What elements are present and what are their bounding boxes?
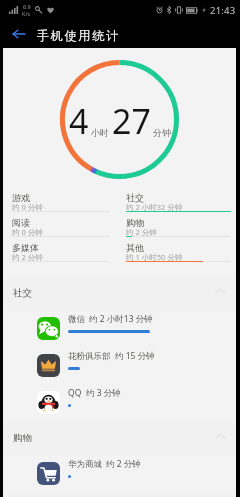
staticText: 其他 xyxy=(126,242,144,253)
staticText: 手机使用统计 xyxy=(37,28,120,43)
staticText: 约 2 分钟 xyxy=(106,458,141,470)
staticText: 社交 xyxy=(126,192,144,203)
staticText: 购物 xyxy=(13,432,32,444)
button[interactable]: 购物 xyxy=(126,212,231,237)
staticText: 约 3 分钟 xyxy=(86,387,121,399)
staticText: 游戏 xyxy=(12,192,30,203)
staticText: 6.9 xyxy=(23,3,31,10)
staticText: 约 2 分钟 xyxy=(12,252,43,262)
staticText: 华为商城 xyxy=(68,459,102,470)
button[interactable]: 游戏 xyxy=(12,187,109,212)
button[interactable]: 多媒体 xyxy=(12,237,109,262)
button[interactable]: 其他 xyxy=(126,237,231,262)
staticText: 小时 xyxy=(91,127,109,138)
staticText: 分钟 xyxy=(153,127,171,138)
staticText: 约 15 分钟 xyxy=(115,350,155,362)
staticText: 4 xyxy=(69,98,89,144)
staticText: 约 0 分钟 xyxy=(12,202,43,212)
button[interactable]: 阅读 xyxy=(12,212,109,237)
staticText: 多媒体 xyxy=(12,242,39,253)
staticText: K/s xyxy=(22,10,31,17)
staticText: 微信 xyxy=(68,314,85,325)
staticText: 21:43 xyxy=(210,4,236,17)
button[interactable]: QQ xyxy=(3,384,236,421)
button[interactable]: 花粉俱乐部 xyxy=(3,347,236,384)
staticText: 约 2 小时13 分钟 xyxy=(89,313,153,325)
button[interactable]: Back xyxy=(0,20,37,48)
staticText: 社交 xyxy=(13,287,32,299)
button[interactable]: 社交 xyxy=(126,187,231,212)
staticText: 约 2 分钟 xyxy=(126,227,157,237)
button[interactable]: 社交 xyxy=(3,276,236,310)
staticText: 约 0 分钟 xyxy=(12,227,43,237)
staticText: 购物 xyxy=(126,217,144,228)
staticText: 约 2 小时32 分钟 xyxy=(126,202,183,212)
staticText: 27 xyxy=(112,98,151,144)
button[interactable]: 华为商城 xyxy=(3,455,236,492)
button[interactable]: 购物 xyxy=(3,421,236,455)
button[interactable]: 微信 xyxy=(3,310,236,347)
staticText: 阅读 xyxy=(12,217,30,228)
staticText: 花粉俱乐部 xyxy=(68,351,111,362)
staticText: 约 1 小时50 分钟 xyxy=(126,252,183,262)
staticText: QQ xyxy=(68,387,82,399)
